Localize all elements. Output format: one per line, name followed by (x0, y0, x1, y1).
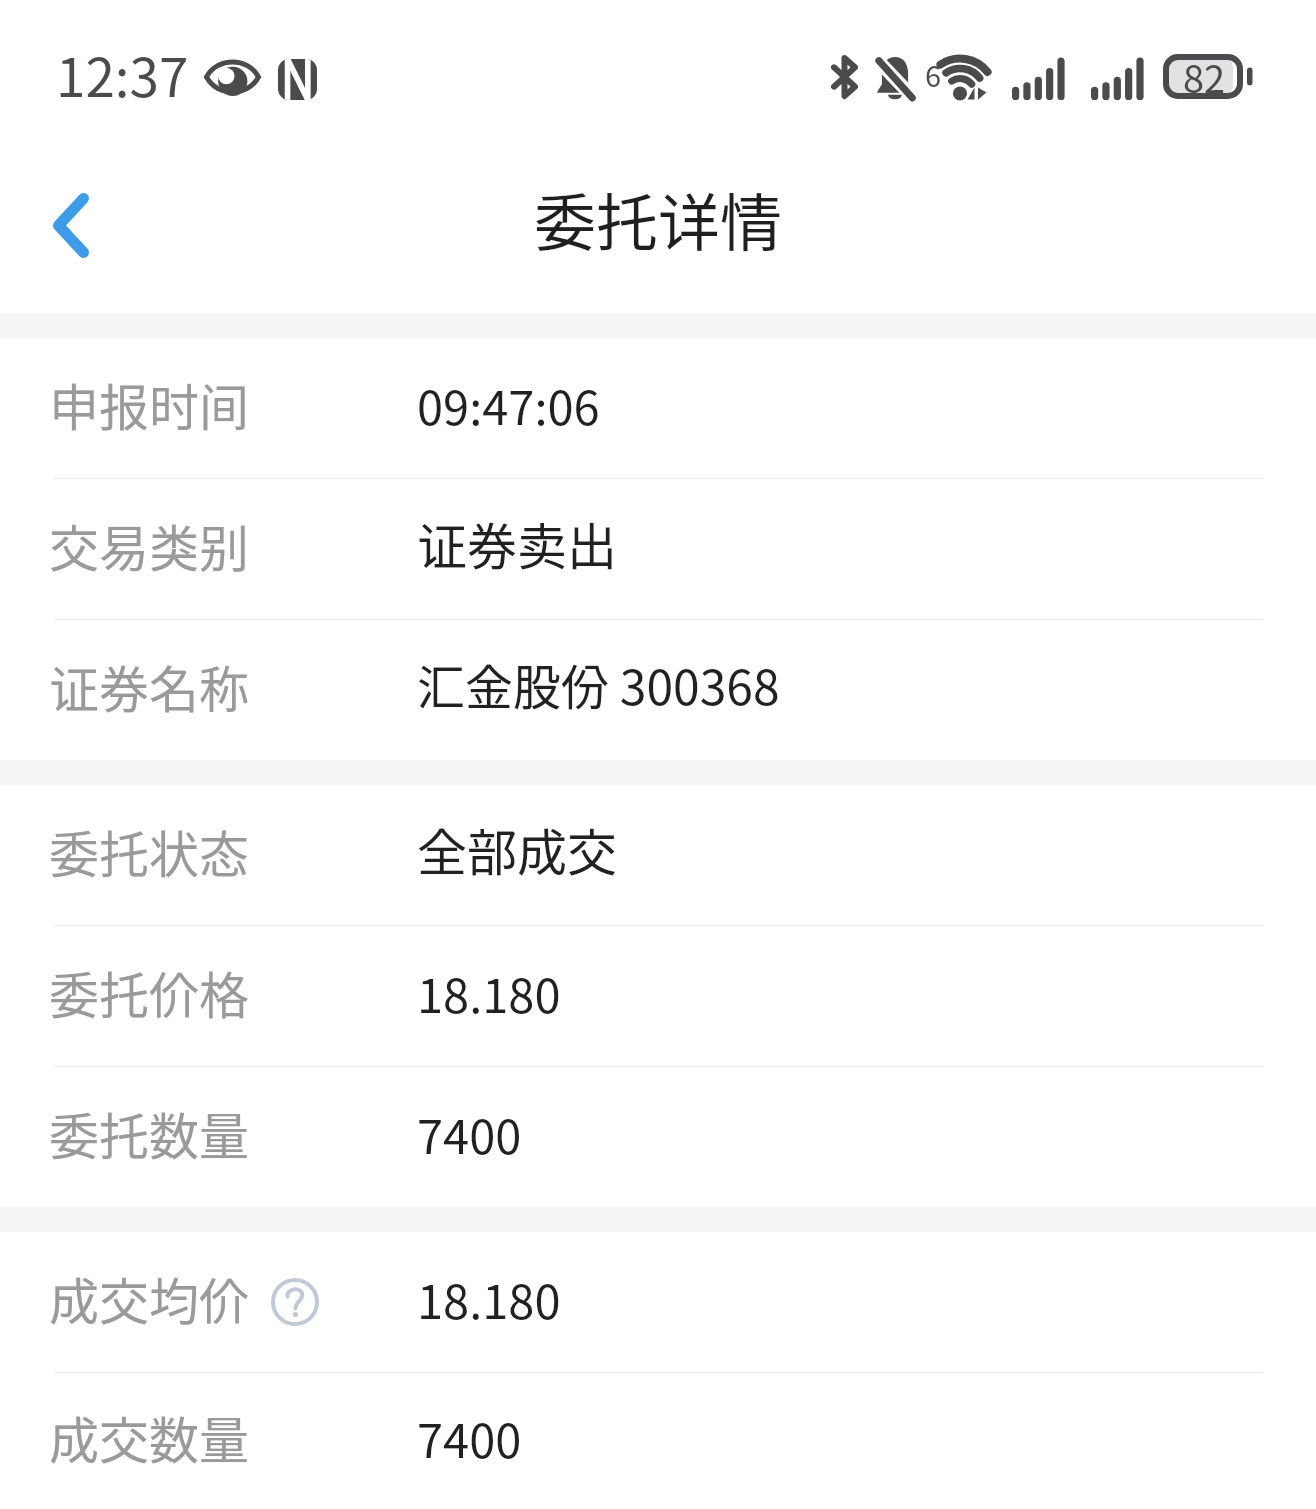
staticText: 成交数量 (49, 1401, 249, 1473)
staticText: 委托数量 (49, 1097, 249, 1169)
staticText: 证券卖出 (417, 507, 617, 579)
staticText: 12:37 (56, 36, 189, 113)
staticText: 申报时间 (49, 368, 249, 440)
button[interactable]: 返回 (18, 172, 124, 278)
button[interactable]: 证券名称 (0, 620, 1316, 760)
staticText: 证券名称 (49, 650, 249, 722)
button[interactable]: 委托价格 (0, 926, 1316, 1066)
staticText: 委托价格 (49, 956, 249, 1028)
button[interactable]: 交易类别 (0, 479, 1316, 619)
staticText: 6 (925, 53, 942, 95)
button[interactable]: 成交数量 (0, 1373, 1316, 1509)
button[interactable]: 成交均价 (0, 1232, 1316, 1372)
staticText: 18.180 (417, 1264, 561, 1332)
staticText: 成交均价 (49, 1262, 249, 1334)
staticText: 7400 (417, 1403, 522, 1471)
staticText: 09:47:06 (417, 370, 600, 438)
staticText: 82 (1183, 49, 1226, 104)
staticText: 委托详情 (534, 174, 783, 264)
staticText: 全部成交 (417, 813, 617, 885)
staticText: 7400 (417, 1099, 522, 1167)
staticText: 18.180 (417, 958, 561, 1026)
button[interactable]: 帮助说明 (270, 1277, 320, 1327)
staticText: 交易类别 (49, 509, 249, 581)
button[interactable]: 申报时间 (0, 338, 1316, 478)
button[interactable]: 委托状态 (0, 785, 1316, 925)
staticText: 汇金股份 300368 (417, 649, 780, 719)
button[interactable]: 委托数量 (0, 1067, 1316, 1207)
staticText: 委托状态 (49, 815, 249, 887)
